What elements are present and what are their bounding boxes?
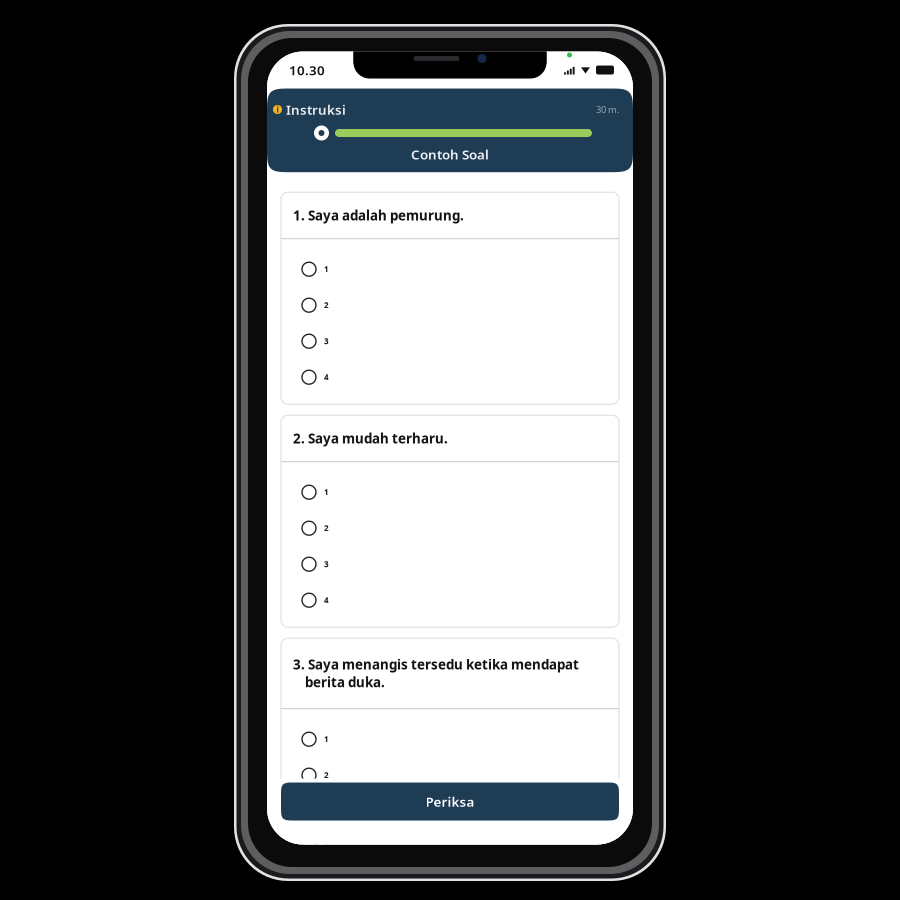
staticText: 2 bbox=[324, 300, 329, 310]
staticText: 4 bbox=[324, 595, 329, 605]
staticText: i bbox=[276, 104, 278, 115]
staticText: Periksa bbox=[425, 793, 474, 810]
button[interactable]: Periksa bbox=[281, 782, 619, 820]
button[interactable]: Pilihan 1 bbox=[281, 721, 619, 757]
staticText: 30 m. bbox=[596, 103, 620, 116]
staticText: 4 bbox=[324, 372, 329, 382]
button[interactable]: Pilihan 3 bbox=[281, 546, 619, 582]
staticText: Contoh Soal bbox=[411, 145, 489, 163]
staticText: 2. Saya mudah terharu. bbox=[293, 429, 448, 447]
button[interactable]: Pilihan 4 bbox=[281, 582, 619, 618]
staticText: 3 bbox=[324, 559, 329, 569]
staticText: Instruksi bbox=[286, 101, 346, 118]
staticText: 4 bbox=[324, 842, 329, 852]
staticText: 10.30 bbox=[289, 61, 325, 79]
staticText: 2 bbox=[324, 523, 329, 533]
staticText: 3. Saya menangis tersedu ketika mendapat… bbox=[293, 655, 579, 691]
button[interactable]: Pilihan 1 bbox=[281, 251, 619, 287]
button[interactable]: i bbox=[267, 97, 352, 121]
button[interactable]: Pilihan 3 bbox=[281, 793, 619, 829]
button[interactable]: Pilihan 1 bbox=[281, 474, 619, 510]
button[interactable]: Pilihan 2 bbox=[281, 757, 619, 793]
button[interactable]: Pilihan 4 bbox=[281, 829, 619, 865]
staticText: 1 bbox=[324, 264, 329, 274]
button[interactable]: Pilihan 4 bbox=[281, 359, 619, 395]
button[interactable]: Pilihan 2 bbox=[281, 287, 619, 323]
button[interactable]: Pilihan 3 bbox=[281, 323, 619, 359]
staticText: 3 bbox=[324, 336, 329, 346]
staticText: 2 bbox=[324, 770, 329, 780]
button[interactable]: Pilihan 2 bbox=[281, 510, 619, 546]
staticText: 1. Saya adalah pemurung. bbox=[293, 206, 464, 224]
staticText: 1 bbox=[324, 487, 329, 497]
staticText: 1 bbox=[324, 734, 329, 744]
